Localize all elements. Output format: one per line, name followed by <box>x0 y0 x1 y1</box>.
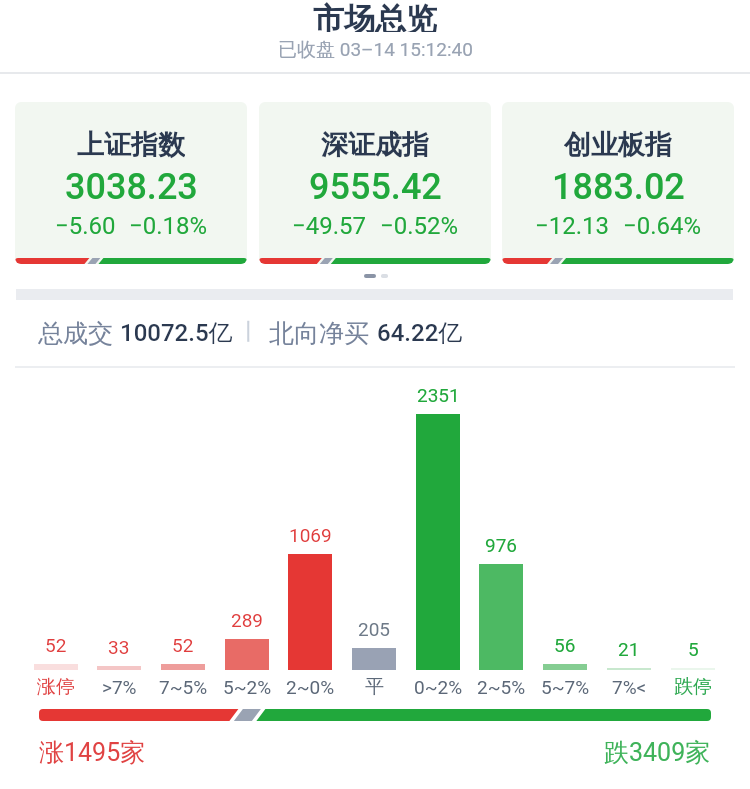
button[interactable]: 深证成指 <box>259 102 491 264</box>
staticText: 5~2% <box>223 676 272 698</box>
staticText: 丨 <box>238 318 260 346</box>
staticText: −0.52% <box>380 212 459 238</box>
staticText: 9555.42 <box>309 166 442 208</box>
staticText: 56 <box>554 634 576 656</box>
staticText: 10072.5亿 <box>120 318 233 346</box>
staticText: 涨1495家 <box>39 737 146 765</box>
staticText: 跌停 <box>674 675 712 699</box>
staticText: 2~0% <box>286 676 335 698</box>
staticText: 33 <box>108 636 130 658</box>
staticText: 5~7% <box>541 676 590 698</box>
staticText: 市场总览 <box>313 0 437 32</box>
staticText: 21 <box>618 638 640 660</box>
staticText: 深证成指 <box>321 128 429 160</box>
button[interactable]: 上证指数 <box>15 102 247 264</box>
staticText: 上证指数 <box>77 128 185 160</box>
staticText: 205 <box>358 618 391 640</box>
staticText: 289 <box>231 609 264 631</box>
staticText: 0~2% <box>414 676 463 698</box>
staticText: −49.57 <box>292 212 367 238</box>
staticText: −0.64% <box>623 212 702 238</box>
staticText: 创业板指 <box>564 128 672 160</box>
staticText: 平 <box>365 675 384 699</box>
staticText: 976 <box>485 534 518 556</box>
button[interactable]: 创业板指 <box>502 102 734 264</box>
staticText: 3038.23 <box>65 166 198 208</box>
staticText: >7% <box>102 676 137 698</box>
staticText: 2~5% <box>477 676 526 698</box>
staticText: 64.22亿 <box>377 318 463 346</box>
staticText: 已收盘 03–14 15:12:40 <box>278 38 473 62</box>
staticText: 7~5% <box>159 676 208 698</box>
staticText: 总成交 <box>38 318 113 346</box>
staticText: 7%< <box>612 676 647 698</box>
staticText: 北向净买 <box>269 318 369 346</box>
staticText: −0.18% <box>129 212 208 238</box>
staticText: 跌3409家 <box>604 737 711 765</box>
staticText: 1069 <box>289 524 332 546</box>
staticText: 52 <box>45 634 67 656</box>
staticText: 5 <box>688 638 699 660</box>
staticText: 涨停 <box>37 675 75 699</box>
staticText: −5.60 <box>55 212 116 238</box>
staticText: 1883.02 <box>552 166 685 208</box>
staticText: 52 <box>172 634 194 656</box>
staticText: 2351 <box>417 384 460 406</box>
staticText: −12.13 <box>535 212 610 238</box>
